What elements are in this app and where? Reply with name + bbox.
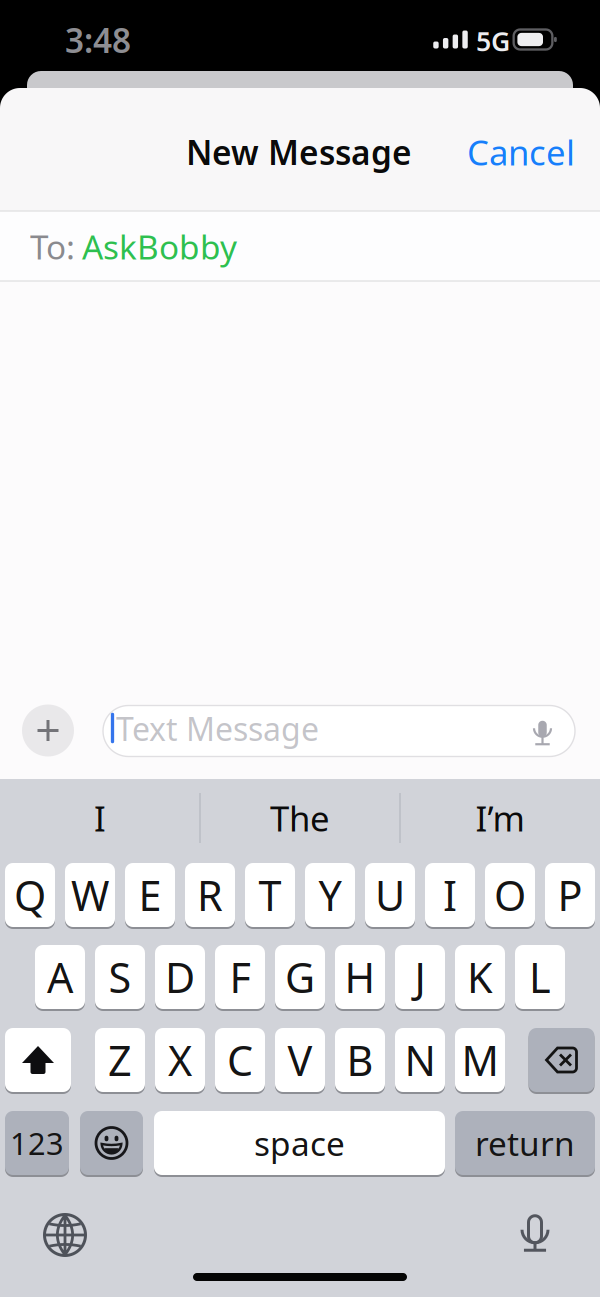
staticText: Q bbox=[14, 868, 46, 922]
staticText: K bbox=[467, 950, 493, 1004]
button[interactable]: Y bbox=[305, 863, 355, 927]
staticText: G bbox=[285, 950, 315, 1004]
button[interactable]: Emoji bbox=[80, 1111, 143, 1175]
staticText: T bbox=[258, 868, 281, 922]
button[interactable]: I bbox=[5, 788, 195, 848]
staticText: M bbox=[461, 1033, 498, 1087]
staticText: P bbox=[557, 868, 582, 922]
button[interactable]: D bbox=[155, 945, 205, 1009]
button[interactable]: Z bbox=[95, 1028, 145, 1092]
button[interactable]: More options bbox=[22, 704, 74, 756]
staticText: B bbox=[346, 1033, 373, 1087]
staticText: X bbox=[168, 1033, 192, 1087]
button[interactable]: G bbox=[275, 945, 325, 1009]
staticText: Cancel bbox=[467, 129, 575, 175]
button[interactable]: X bbox=[155, 1028, 205, 1092]
button[interactable]: F bbox=[215, 945, 265, 1009]
staticText: The bbox=[270, 795, 330, 841]
staticText: U bbox=[375, 868, 405, 922]
button[interactable]: Shift bbox=[5, 1028, 71, 1092]
button[interactable]: J bbox=[395, 945, 445, 1009]
button[interactable]: V bbox=[275, 1028, 325, 1092]
button[interactable]: R bbox=[185, 863, 235, 927]
button[interactable]: M bbox=[455, 1028, 505, 1092]
staticText: I’m bbox=[475, 795, 524, 841]
button[interactable]: E bbox=[125, 863, 175, 927]
button[interactable]: Text Message field bbox=[103, 705, 575, 756]
button[interactable]: Dictation bbox=[507, 1205, 563, 1261]
button[interactable]: Cancel bbox=[467, 129, 575, 175]
staticText: New Message bbox=[186, 130, 412, 174]
staticText: E bbox=[138, 868, 161, 922]
staticText: N bbox=[404, 1033, 435, 1087]
button[interactable]: space bbox=[154, 1111, 445, 1175]
staticText: 123 bbox=[10, 1123, 64, 1163]
button[interactable]: I’m bbox=[405, 788, 595, 848]
staticText: O bbox=[494, 868, 526, 922]
button[interactable]: K bbox=[455, 945, 505, 1009]
staticText: return bbox=[475, 1121, 575, 1165]
staticText: AskBobby bbox=[82, 224, 237, 269]
button[interactable]: I bbox=[425, 863, 475, 927]
button[interactable]: return bbox=[455, 1111, 595, 1175]
staticText: V bbox=[287, 1033, 312, 1087]
staticText: Z bbox=[108, 1033, 132, 1087]
staticText: space bbox=[254, 1121, 345, 1165]
staticText: L bbox=[529, 950, 551, 1004]
staticText: To: bbox=[30, 224, 75, 269]
button[interactable]: The bbox=[205, 788, 395, 848]
button[interactable]: 123 bbox=[5, 1111, 69, 1175]
staticText: S bbox=[108, 950, 131, 1004]
staticText: C bbox=[227, 1033, 253, 1087]
button[interactable]: Delete bbox=[528, 1028, 594, 1092]
button[interactable]: Q bbox=[5, 863, 55, 927]
staticText: Y bbox=[318, 868, 341, 922]
staticText: F bbox=[229, 950, 250, 1004]
staticText: H bbox=[344, 950, 375, 1004]
staticText: R bbox=[197, 868, 223, 922]
staticText: J bbox=[414, 950, 425, 1004]
button[interactable]: Next keyboard bbox=[37, 1207, 93, 1263]
button[interactable]: H bbox=[335, 945, 385, 1009]
button[interactable]: B bbox=[335, 1028, 385, 1092]
staticText: W bbox=[71, 868, 109, 922]
staticText: Text Message bbox=[116, 707, 319, 750]
staticText: D bbox=[165, 950, 195, 1004]
button[interactable]: C bbox=[215, 1028, 265, 1092]
staticText: I bbox=[443, 868, 457, 922]
button[interactable]: S bbox=[95, 945, 145, 1009]
button[interactable]: N bbox=[395, 1028, 445, 1092]
button[interactable]: A bbox=[35, 945, 85, 1009]
button[interactable]: W bbox=[65, 863, 115, 927]
button[interactable]: P bbox=[545, 863, 595, 927]
button[interactable]: O bbox=[485, 863, 535, 927]
staticText: 3:48 bbox=[65, 18, 131, 62]
button[interactable]: T bbox=[245, 863, 295, 927]
staticText: 5G bbox=[476, 23, 510, 59]
staticText: I bbox=[94, 795, 106, 841]
button[interactable]: L bbox=[515, 945, 565, 1009]
staticText: A bbox=[47, 950, 73, 1004]
button[interactable]: U bbox=[365, 863, 415, 927]
